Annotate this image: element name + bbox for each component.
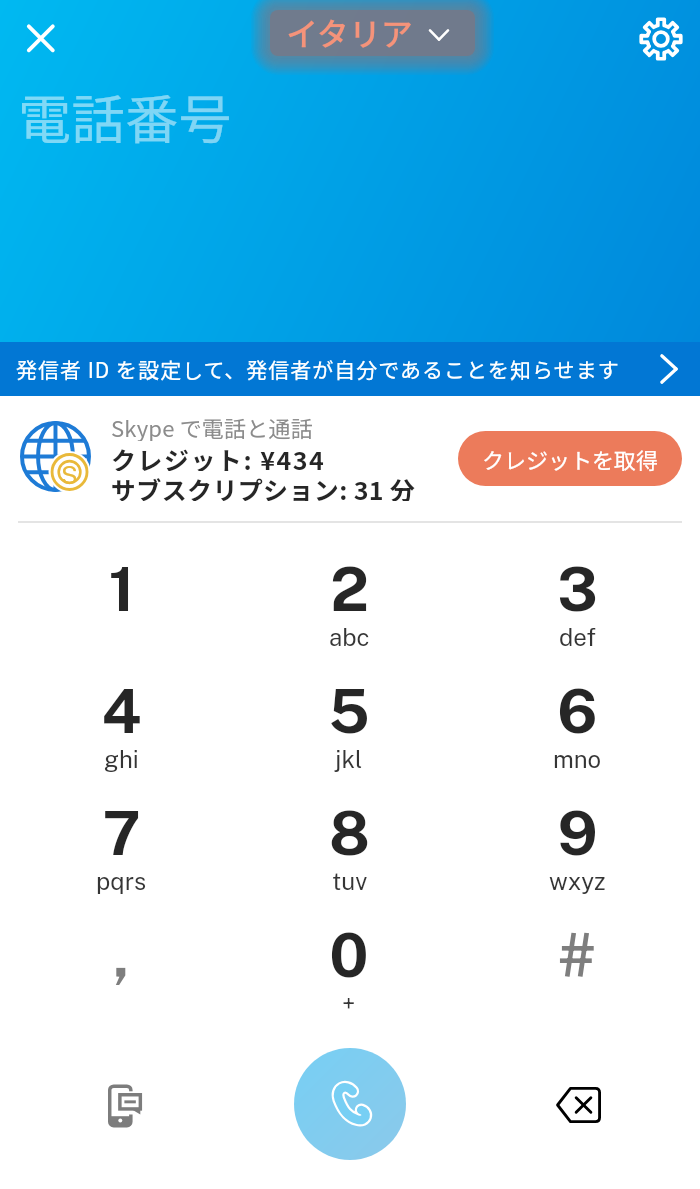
- staticText: #: [558, 919, 596, 985]
- staticText: tuv: [332, 867, 368, 895]
- button[interactable]: 9: [463, 797, 691, 919]
- staticText: def: [559, 623, 596, 651]
- button[interactable]: 7: [7, 797, 235, 919]
- button[interactable]: S: [0, 396, 700, 521]
- staticText: 5: [328, 675, 370, 741]
- staticText: 4: [101, 675, 142, 741]
- staticText: 発信者 ID を設定して、発信者が自分であることを知らせます: [16, 354, 620, 384]
- staticText: jkl: [335, 745, 363, 773]
- button[interactable]: Select country: [250, 0, 494, 84]
- staticText: S: [61, 460, 78, 489]
- button[interactable]: Call: [294, 1048, 406, 1160]
- button[interactable]: Backspace: [546, 1073, 610, 1137]
- staticText: ghi: [104, 745, 139, 773]
- button[interactable]: クレジットを取得: [458, 431, 682, 486]
- button[interactable]: 3: [463, 553, 691, 675]
- staticText: 電話番号: [18, 78, 233, 155]
- button[interactable]: Settings: [639, 17, 683, 61]
- staticText: 6: [557, 675, 598, 741]
- button[interactable]: 5: [235, 675, 463, 797]
- button[interactable]: 8: [235, 797, 463, 919]
- staticText: +: [342, 989, 356, 1017]
- staticText: 8: [329, 797, 370, 863]
- button[interactable]: Send SMS: [92, 1073, 156, 1137]
- button[interactable]: 発信者 ID を設定して、発信者が自分であることを知らせます: [0, 342, 700, 396]
- button[interactable]: ,: [7, 919, 235, 1041]
- button[interactable]: 0: [235, 919, 463, 1041]
- staticText: クレジット: ¥434: [111, 441, 326, 471]
- staticText: 0: [329, 919, 369, 985]
- staticText: abc: [329, 623, 370, 651]
- staticText: 3: [557, 553, 598, 619]
- staticText: クレジットを取得: [482, 443, 659, 475]
- button[interactable]: #: [463, 919, 691, 1041]
- staticText: 2: [330, 553, 369, 619]
- button[interactable]: 4: [7, 675, 235, 797]
- staticText: サブスクリプション: 31 分: [111, 471, 416, 501]
- staticText: ,: [113, 919, 130, 985]
- staticText: 7: [102, 797, 141, 863]
- staticText: mno: [553, 745, 602, 773]
- button[interactable]: 2: [235, 553, 463, 675]
- staticText: 9: [557, 797, 598, 863]
- button[interactable]: Close: [17, 14, 65, 62]
- staticText: 1: [108, 553, 135, 619]
- button[interactable]: 6: [463, 675, 691, 797]
- staticText: pqrs: [96, 867, 147, 895]
- staticText: wxyz: [549, 867, 606, 895]
- staticText: イタリア: [286, 9, 413, 51]
- button[interactable]: 1: [7, 553, 235, 675]
- staticText: Skype で電話と通話: [111, 411, 313, 441]
